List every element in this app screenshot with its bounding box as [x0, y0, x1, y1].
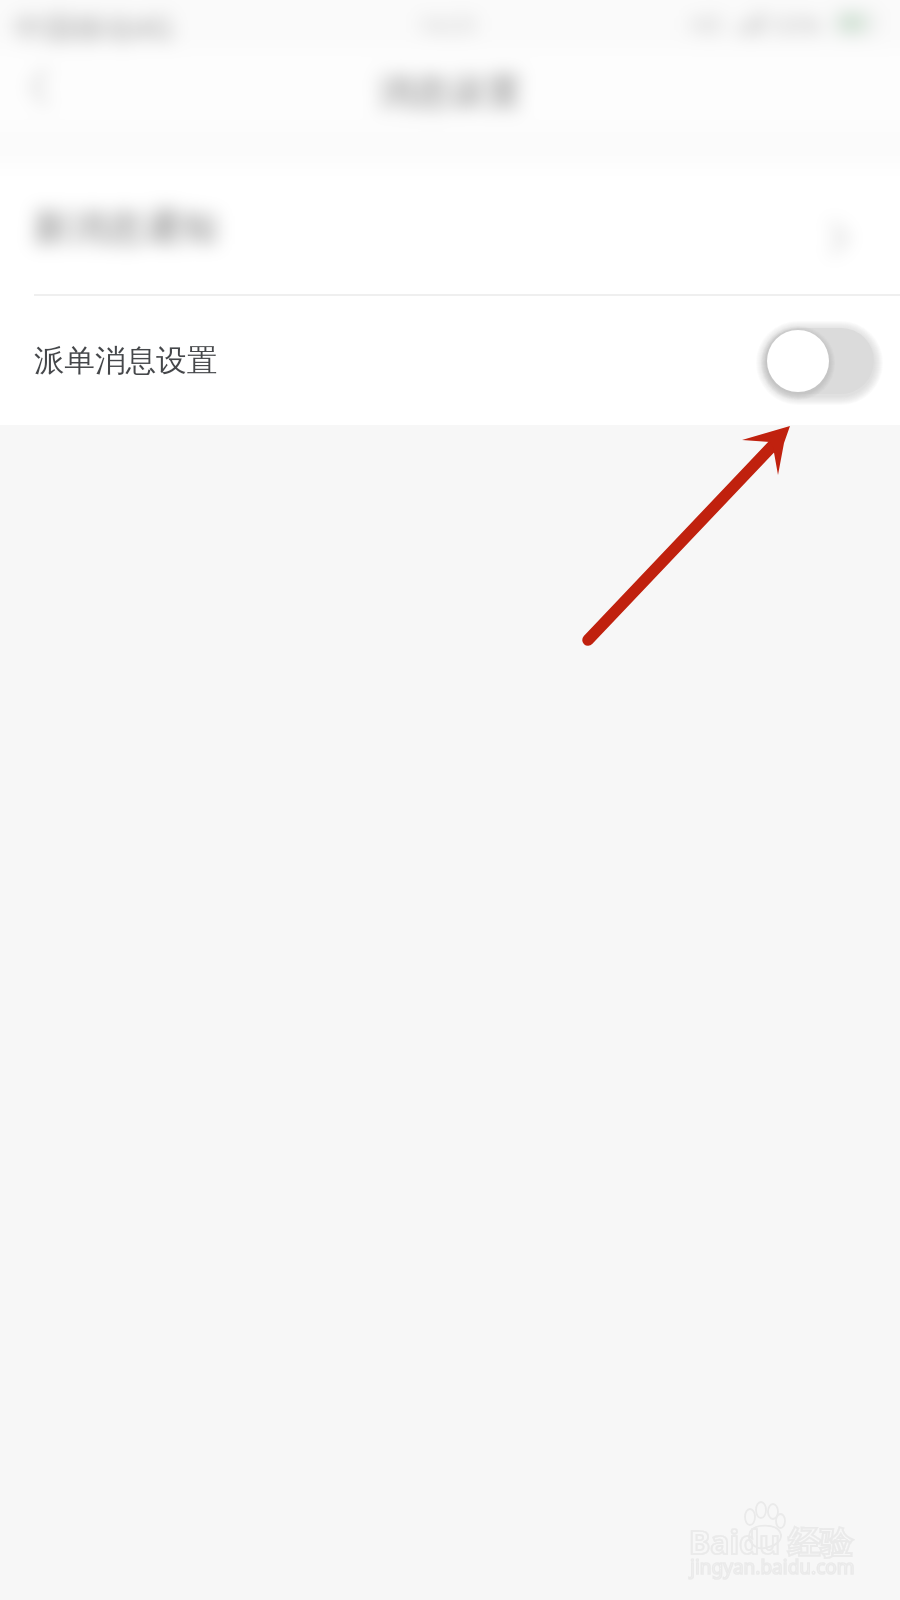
button[interactable]: 派单消息设置 [0, 296, 900, 425]
staticText: 消息设置 [378, 69, 522, 114]
staticText: 新消息通知 [33, 204, 218, 251]
staticText: 派单消息设置 [34, 342, 217, 380]
staticText: Baidu 经验 [689, 1520, 853, 1564]
staticText: 83% [776, 9, 822, 40]
staticText: jingyan.baidu.com [690, 1554, 855, 1580]
button[interactable]: 派单消息设置 toggle [765, 327, 875, 395]
button[interactable] [0, 166, 900, 294]
staticText: 中国移动4G [14, 7, 173, 48]
